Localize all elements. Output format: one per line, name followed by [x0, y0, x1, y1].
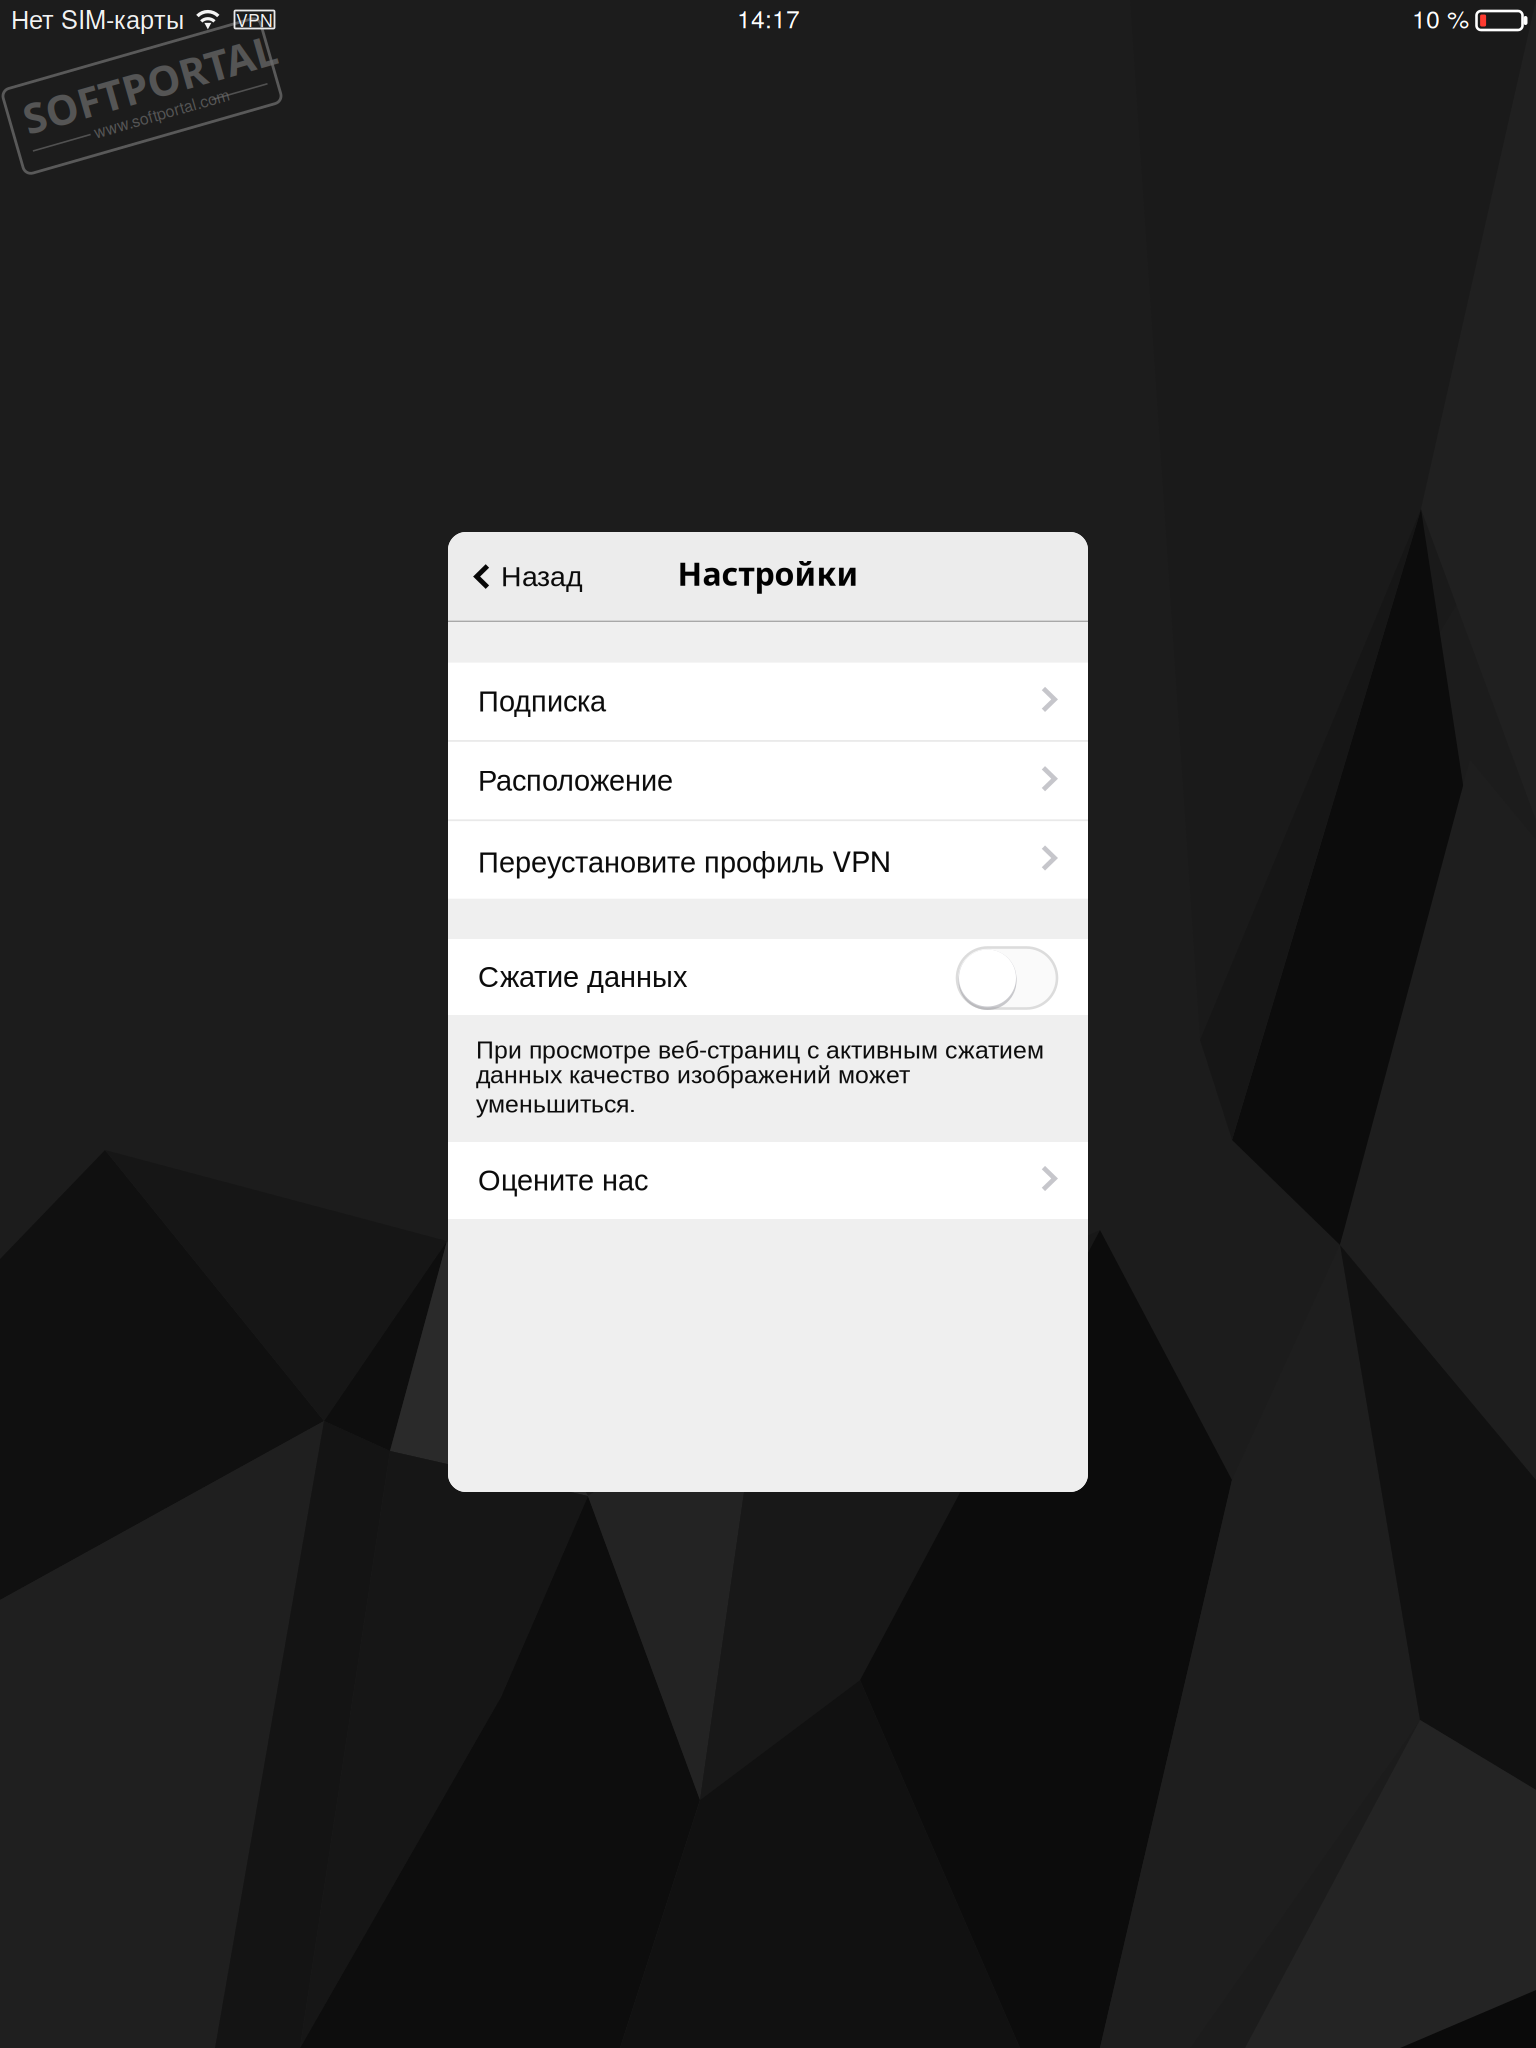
staticText: Подписка [478, 685, 606, 717]
staticText: Настройки [677, 552, 858, 595]
staticText: 10 % [1412, 0, 1469, 36]
staticText: При просмотре веб-страниц с активным сжа… [476, 1030, 1044, 1119]
button[interactable]: Назад [448, 532, 603, 621]
staticText: Переустановите профиль VPN [478, 839, 891, 881]
button[interactable]: Расположение [448, 742, 1088, 819]
staticText: Нет SIM-карты [11, 0, 184, 36]
staticText: SOFTPORTAL [22, 58, 284, 114]
button[interactable]: Подписка [448, 663, 1088, 740]
staticText: www.softportal.com [86, 106, 226, 129]
button[interactable]: Оцените нас [448, 1142, 1088, 1219]
button[interactable]: Переустановите профиль VPN [448, 821, 1088, 899]
staticText: Сжатие данных [478, 961, 687, 993]
staticText: Назад [501, 560, 583, 592]
button[interactable]: Сжатие данных [957, 947, 1057, 1008]
staticText: 14:17 [737, 0, 800, 35]
staticText: Расположение [478, 764, 673, 797]
staticText: Оцените нас [478, 1164, 648, 1197]
staticText: VPN [236, 7, 273, 32]
